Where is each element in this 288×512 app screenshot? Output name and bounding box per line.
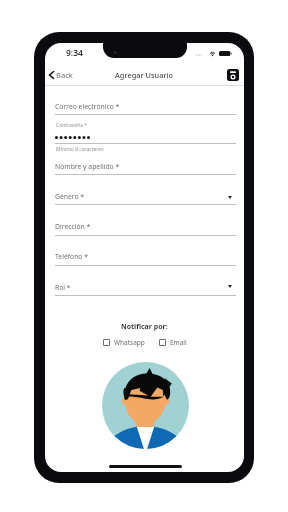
staticText: Teléfono * [55,252,88,261]
staticText: Whatsapp [114,338,145,347]
staticText: Correo electrónico * [55,102,120,111]
staticText: Nombre y apellido * [55,162,120,171]
button[interactable]: Guardar [227,69,239,81]
staticText: Rol * [55,283,71,292]
staticText: Back [56,70,73,80]
button[interactable]: Whatsapp [103,338,145,347]
staticText: Género * [55,192,85,201]
staticText: Contraseña * [56,122,88,129]
staticText: Email [170,338,187,347]
staticText: Agregar Usuario [115,70,174,80]
staticText: 9:34 [66,47,83,59]
staticText: Dirección * [55,222,91,231]
button[interactable]: Back [49,67,73,82]
staticText: Notificar por: [121,322,168,332]
button[interactable]: Email [159,338,187,347]
staticText: Mínimo 8 caracteres [56,146,104,153]
